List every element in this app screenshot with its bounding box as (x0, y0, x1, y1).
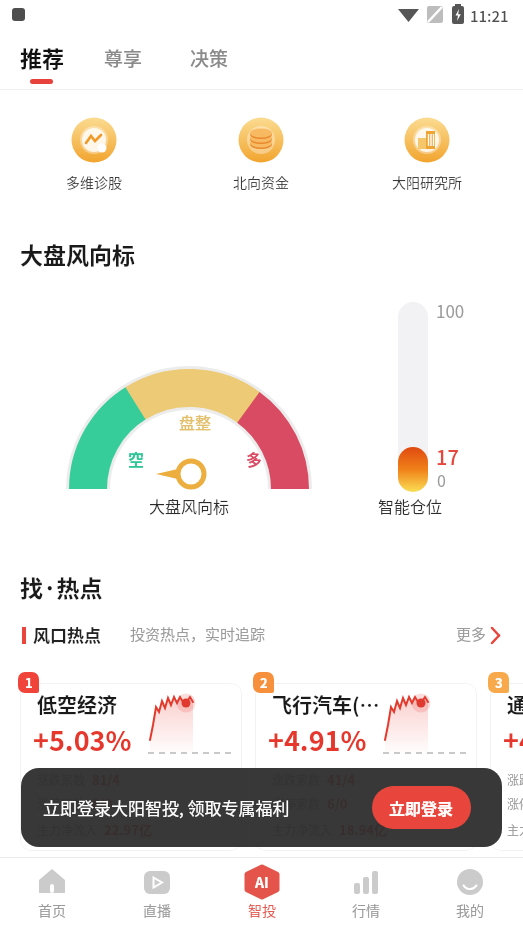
staticText: AI (255, 872, 269, 892)
staticText: 大盘风向标 (119, 494, 259, 517)
staticText: 主力净流入 (507, 821, 523, 838)
button[interactable] (94, 34, 154, 84)
staticText: 多 (239, 447, 269, 470)
staticText: 我的 (456, 900, 484, 920)
staticText: 行情 (352, 900, 380, 920)
staticText: 直播 (143, 900, 171, 920)
staticText: 多维诊股 (66, 172, 122, 192)
button[interactable]: 我的 (418, 858, 522, 929)
staticText: 空 (121, 447, 151, 470)
staticText: 立即登录 (389, 796, 454, 819)
button[interactable]: 通用航空 (490, 683, 523, 851)
staticText: 100 (436, 298, 465, 323)
staticText: 飞行汽车(… (272, 690, 380, 719)
staticText: 2 (260, 673, 268, 692)
staticText: 3 (495, 673, 503, 692)
staticText: 8/0 (92, 794, 113, 813)
button[interactable]: 首页 (0, 858, 104, 929)
staticText: 首页 (38, 900, 66, 920)
staticText: 涨停家数 (507, 795, 523, 812)
staticText: 风口热点 (33, 622, 101, 647)
staticText: 智能仓位 (345, 494, 475, 517)
staticText: 涨停家数 (272, 795, 321, 812)
button[interactable] (180, 34, 240, 84)
staticText: 低空经济 (37, 690, 117, 719)
staticText: 17 (436, 442, 459, 471)
staticText: 涨停家数 (37, 795, 86, 812)
staticText: +4.91% (268, 720, 367, 759)
button[interactable] (0, 618, 523, 654)
staticText: 22.97亿 (104, 820, 152, 839)
staticText: 18.94亿 (339, 820, 387, 839)
button[interactable]: 行情 (314, 858, 418, 929)
button[interactable]: 多维诊股 (42, 112, 146, 196)
staticText: 推荐 (20, 41, 65, 73)
staticText: 北向资金 (233, 172, 289, 192)
button[interactable]: AI (210, 858, 314, 929)
staticText: 涨跌家数 (507, 771, 523, 788)
staticText: +4.66% (503, 720, 523, 759)
button[interactable]: 直播 (105, 858, 209, 929)
staticText: +5.03% (33, 720, 132, 759)
staticText: 1 (25, 673, 33, 692)
staticText: 6/0 (327, 794, 348, 813)
staticText: 大盘风向标 (20, 237, 135, 270)
staticText: 尊享 (104, 44, 143, 72)
staticText: 81/4 (92, 770, 121, 789)
button[interactable]: 北向资金 (209, 112, 313, 196)
staticText: 盘整 (172, 410, 218, 433)
staticText: 立即登录大阳智投, 领取专属福利 (43, 795, 290, 820)
staticText: 投资热点，实时追踪 (130, 623, 266, 645)
button[interactable]: 低空经济 (20, 683, 242, 851)
button[interactable] (10, 34, 86, 84)
staticText: 0 (437, 468, 446, 491)
button[interactable]: 飞行汽车(… (255, 683, 477, 851)
button[interactable]: 大阳研究所 (375, 112, 479, 196)
staticText: 大阳研究所 (392, 172, 462, 192)
staticText: 找·热点 (20, 570, 103, 603)
staticText: 11:21 (470, 5, 509, 27)
staticText: 更多 (456, 623, 487, 645)
button[interactable]: 立即登录 (372, 786, 471, 829)
staticText: 智投 (248, 900, 276, 920)
staticText: 41/4 (327, 770, 356, 789)
staticText: 通用航空 (507, 690, 523, 719)
staticText: 决策 (190, 44, 229, 72)
